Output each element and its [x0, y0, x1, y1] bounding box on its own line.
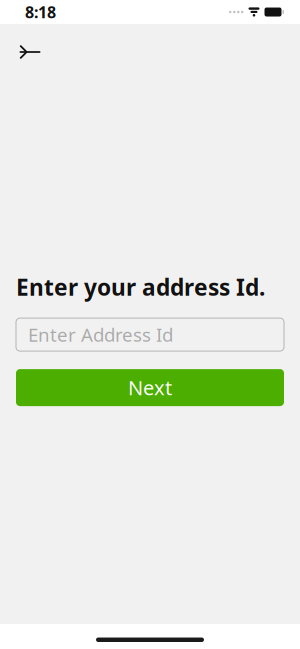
staticText: Next — [128, 374, 172, 401]
button[interactable]: Next — [16, 369, 284, 406]
staticText: Enter Address Id — [28, 322, 173, 347]
button[interactable]: Enter Address Id — [16, 318, 284, 351]
staticText: Enter your address Id. — [16, 272, 265, 302]
button[interactable]: Back — [12, 36, 48, 68]
staticText: 8:18 — [25, 1, 56, 23]
